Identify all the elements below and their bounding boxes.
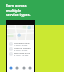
button[interactable]: Explore [14, 65, 20, 71]
staticText: 1.2 km · 5 min [14, 44, 28, 46]
staticText: Earn across multiple service types. [6, 3, 34, 17]
button[interactable]: Central Station [9, 46, 32, 51]
staticText: Westfield Mall [14, 41, 30, 44]
button[interactable]: Saved [21, 65, 27, 71]
button[interactable]: Home [8, 65, 14, 71]
staticText: 3.1 km · 12 min [14, 54, 29, 56]
button[interactable]: Westfield Mall [9, 41, 32, 46]
button[interactable]: Profile [27, 65, 33, 71]
staticText: 2.4 km · 9 min [14, 49, 28, 51]
staticText: Riverside Park [14, 51, 30, 54]
button[interactable]: Riverside Park [9, 51, 32, 56]
staticText: Central Station [14, 46, 31, 49]
